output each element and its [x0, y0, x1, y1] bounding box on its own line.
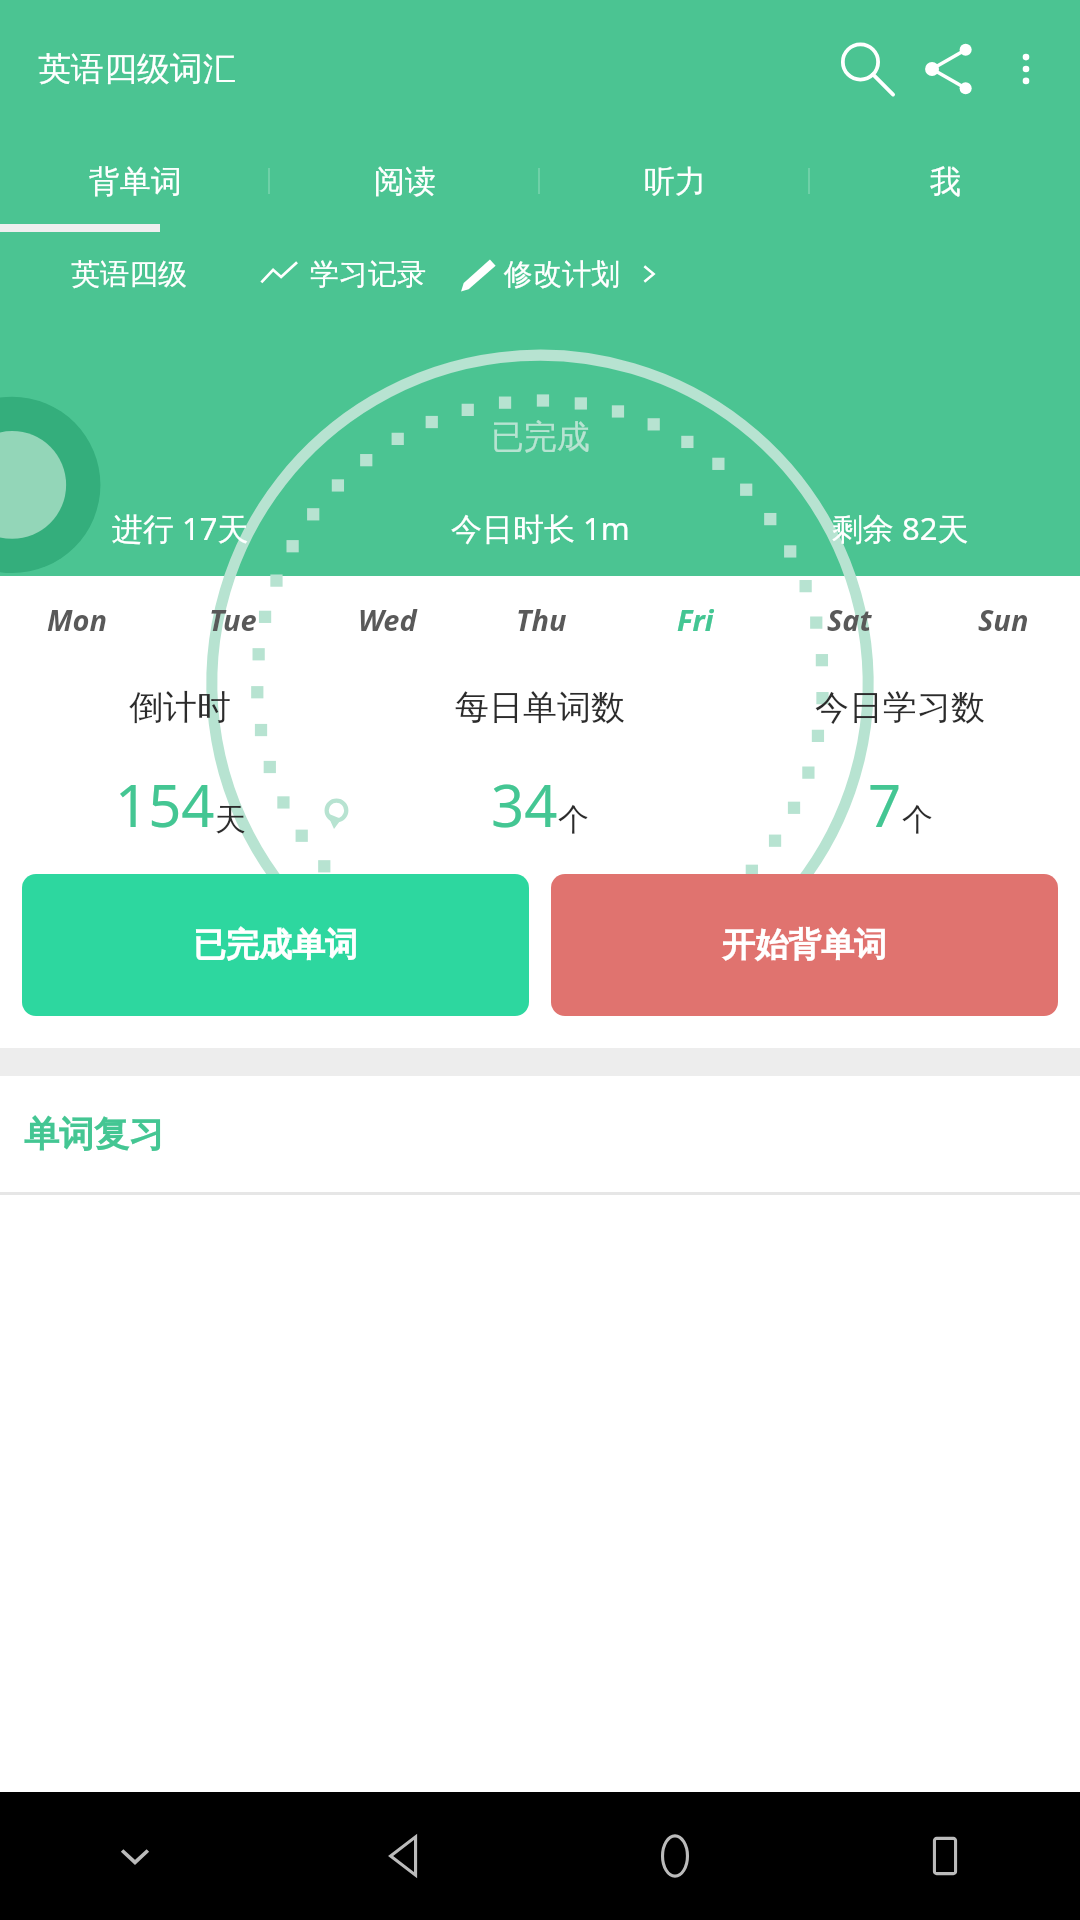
button[interactable]: 单词复习	[0, 1076, 1080, 1192]
button[interactable]: 英语四级词汇	[38, 48, 236, 90]
button[interactable]: 背单词	[0, 138, 270, 224]
button[interactable]: 英语四级	[0, 232, 258, 316]
button[interactable]: Wed	[310, 576, 464, 662]
staticText: 天	[215, 800, 246, 839]
button[interactable]: 已完成单词	[22, 874, 529, 1016]
staticText: 已完成	[491, 416, 590, 458]
staticText: 听力	[644, 162, 706, 201]
button[interactable]: 倒计时	[0, 662, 360, 874]
button[interactable]: Recents	[810, 1792, 1080, 1920]
button[interactable]: 我	[810, 138, 1080, 224]
staticText: 154	[115, 765, 215, 844]
button[interactable]: 听力	[540, 138, 810, 224]
staticText: 个	[902, 800, 933, 839]
staticText: 我	[930, 162, 961, 201]
staticText: 已完成单词	[193, 924, 358, 966]
staticText: Tue	[209, 600, 257, 639]
staticText: 34	[491, 765, 558, 844]
button[interactable]: Tue	[155, 576, 310, 662]
staticText: 个	[558, 800, 589, 839]
button[interactable]: Thu	[464, 576, 618, 662]
staticText: Thu	[516, 600, 567, 639]
button[interactable]: Fri	[618, 576, 772, 662]
staticText: 英语四级	[71, 256, 187, 293]
button[interactable]: 学习记录	[258, 232, 426, 316]
staticText: Mon	[47, 600, 108, 639]
staticText: 学习记录	[310, 256, 426, 293]
button[interactable]: More options	[990, 33, 1062, 105]
button[interactable]: Home	[540, 1792, 810, 1920]
staticText: 开始背单词	[722, 924, 887, 966]
staticText: 7	[868, 765, 902, 844]
button[interactable]: 修改计划	[458, 232, 662, 316]
staticText: Wed	[358, 600, 417, 639]
staticText: Fri	[677, 600, 714, 639]
staticText: 倒计时	[129, 686, 231, 729]
staticText: 今日学习数	[815, 686, 985, 729]
staticText: 每日单词数	[455, 686, 625, 729]
button[interactable]: 今日学习数	[720, 662, 1080, 874]
button[interactable]: 每日单词数	[360, 662, 720, 874]
staticText: 背单词	[89, 162, 182, 201]
staticText: 单词复习	[24, 1112, 164, 1156]
staticText: 进行 17天	[112, 507, 249, 549]
button[interactable]: 阅读	[270, 138, 540, 224]
button[interactable]: Back	[270, 1792, 540, 1920]
staticText: 阅读	[374, 162, 436, 201]
staticText: Sun	[978, 600, 1029, 639]
button[interactable]: Sat	[772, 576, 926, 662]
staticText: 修改计划	[504, 256, 620, 293]
staticText: 剩余 82天	[832, 507, 969, 549]
button[interactable]: Share	[906, 27, 990, 111]
staticText: Sat	[827, 600, 872, 639]
button[interactable]: Mon	[0, 576, 155, 662]
button[interactable]: 开始背单词	[551, 874, 1058, 1016]
staticText: 今日时长 1m	[451, 507, 630, 549]
button[interactable]: Hide keyboard	[0, 1792, 270, 1920]
button[interactable]: Sun	[926, 576, 1080, 662]
button[interactable]: Search	[822, 27, 906, 111]
